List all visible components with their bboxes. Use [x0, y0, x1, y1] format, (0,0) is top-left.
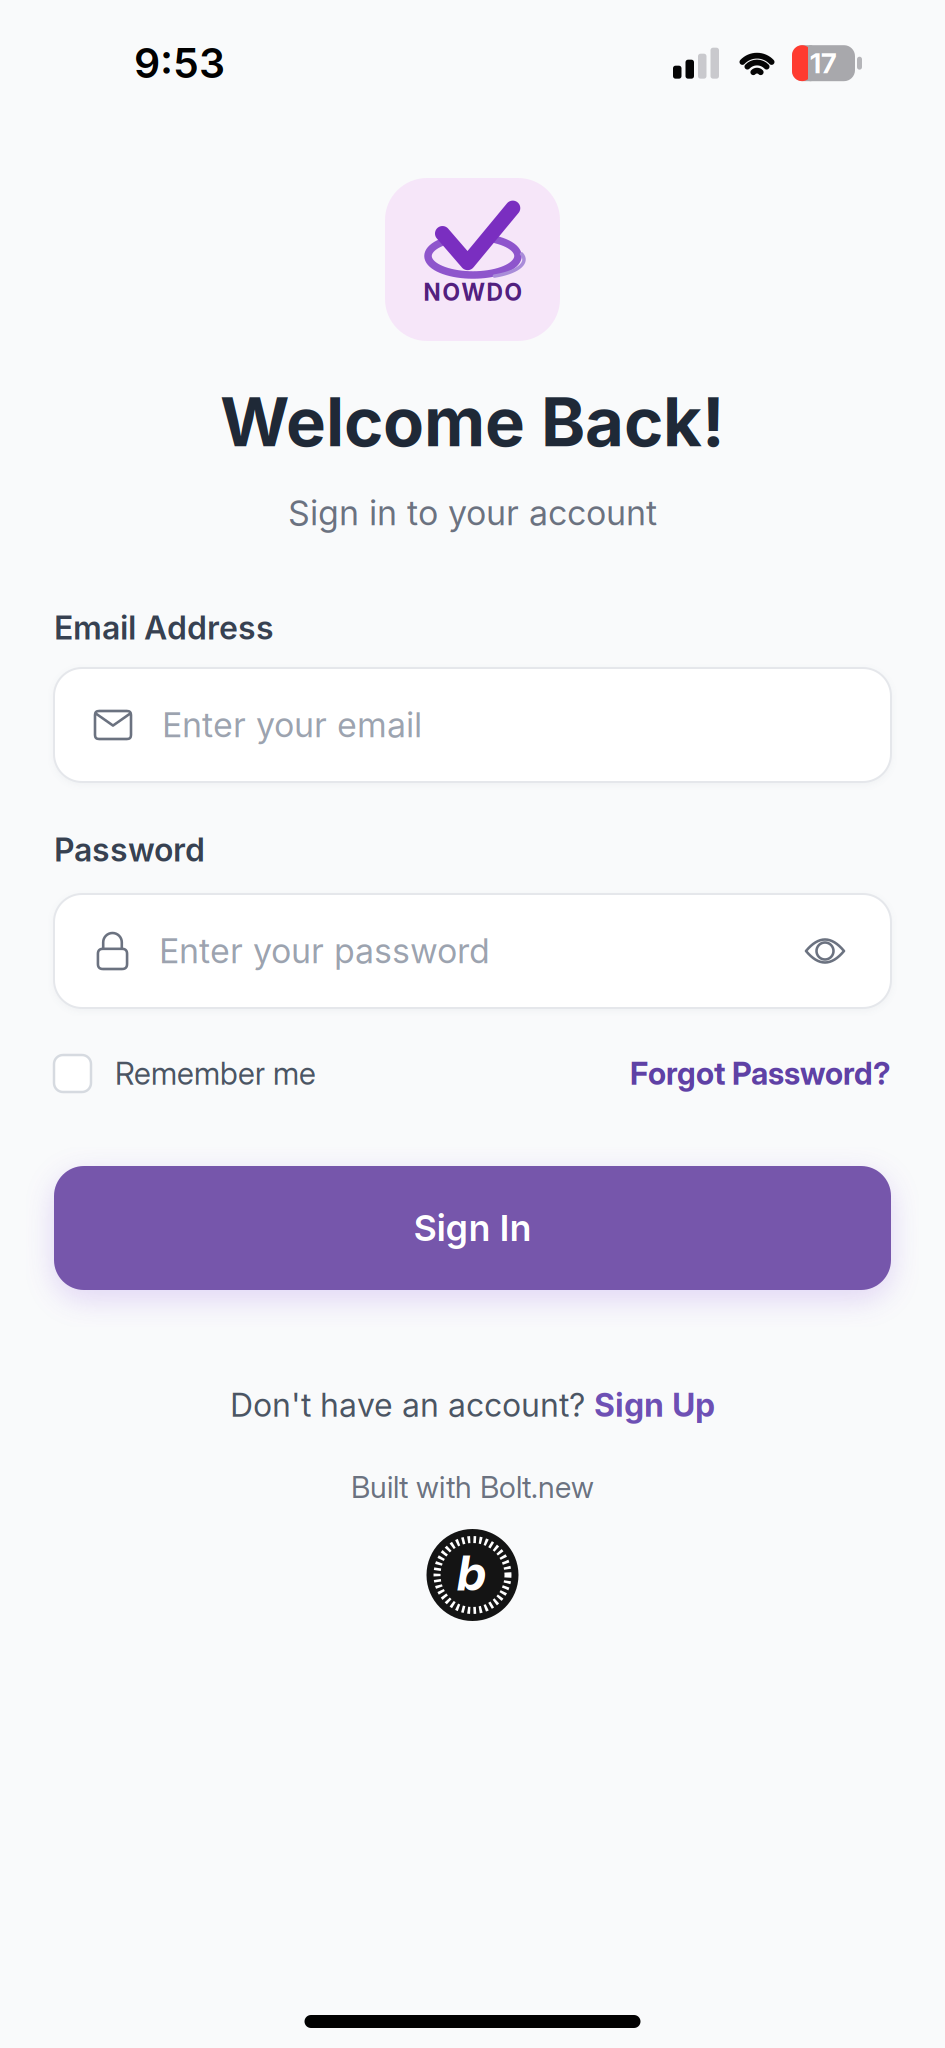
button[interactable]: Enter your password [54, 894, 891, 1008]
staticText: Welcome Back! [220, 382, 725, 461]
button[interactable]: Remember me [54, 1055, 316, 1092]
staticText: Sign Up [594, 1386, 715, 1424]
staticText: Enter your email [162, 705, 422, 745]
button[interactable]: Sign In [54, 1166, 891, 1290]
button[interactable]: Forgot Password? [630, 1055, 891, 1092]
staticText: NOWDO [423, 279, 521, 306]
staticText: Sign In [413, 1207, 531, 1249]
button[interactable]: Bolt.new [426, 1529, 518, 1621]
staticText: Built with Bolt.new [351, 1469, 594, 1505]
button[interactable]: Sign Up [594, 1386, 715, 1424]
staticText: 9:53 [134, 39, 225, 87]
staticText: Password [54, 831, 205, 869]
staticText: b [456, 1545, 486, 1601]
staticText: Email Address [54, 609, 274, 647]
staticText: Remember me [115, 1055, 316, 1092]
staticText: Forgot Password? [630, 1055, 891, 1092]
button[interactable]: Enter your email [54, 668, 891, 782]
staticText: 17 [810, 47, 837, 80]
staticText: Don't have an account? [230, 1386, 585, 1424]
staticText: Enter your password [159, 931, 490, 971]
staticText: Sign in to your account [288, 493, 657, 533]
